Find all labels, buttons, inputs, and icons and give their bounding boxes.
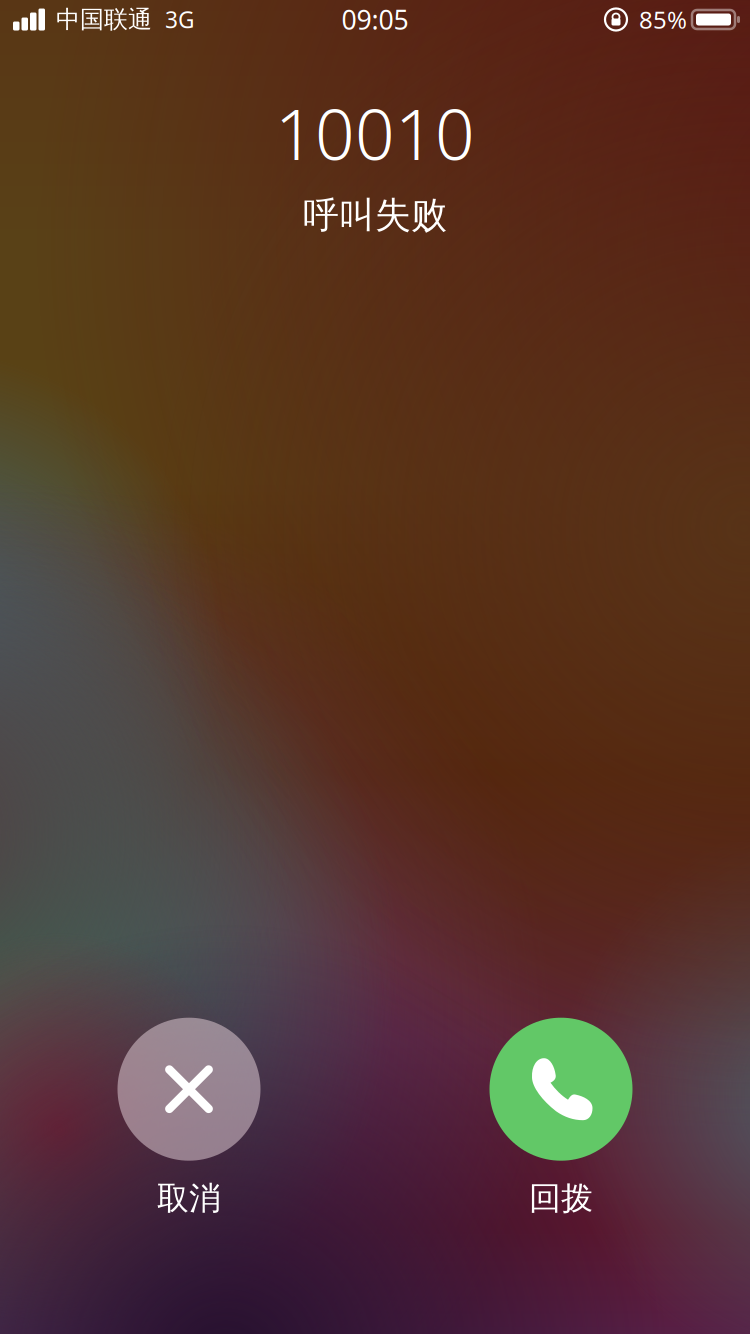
staticText: 85% [639, 4, 687, 35]
staticText: 10010 [275, 87, 475, 179]
staticText: 取消 [157, 1179, 221, 1218]
staticText: 呼叫失败 [303, 193, 447, 237]
staticText: 回拨 [529, 1179, 593, 1218]
button[interactable]: 取消 [94, 1018, 284, 1218]
staticText: 3G [165, 4, 195, 34]
staticText: 中国联通 [56, 5, 152, 34]
staticText: 09:05 [341, 2, 408, 37]
button[interactable]: 回拨 [466, 1018, 656, 1218]
